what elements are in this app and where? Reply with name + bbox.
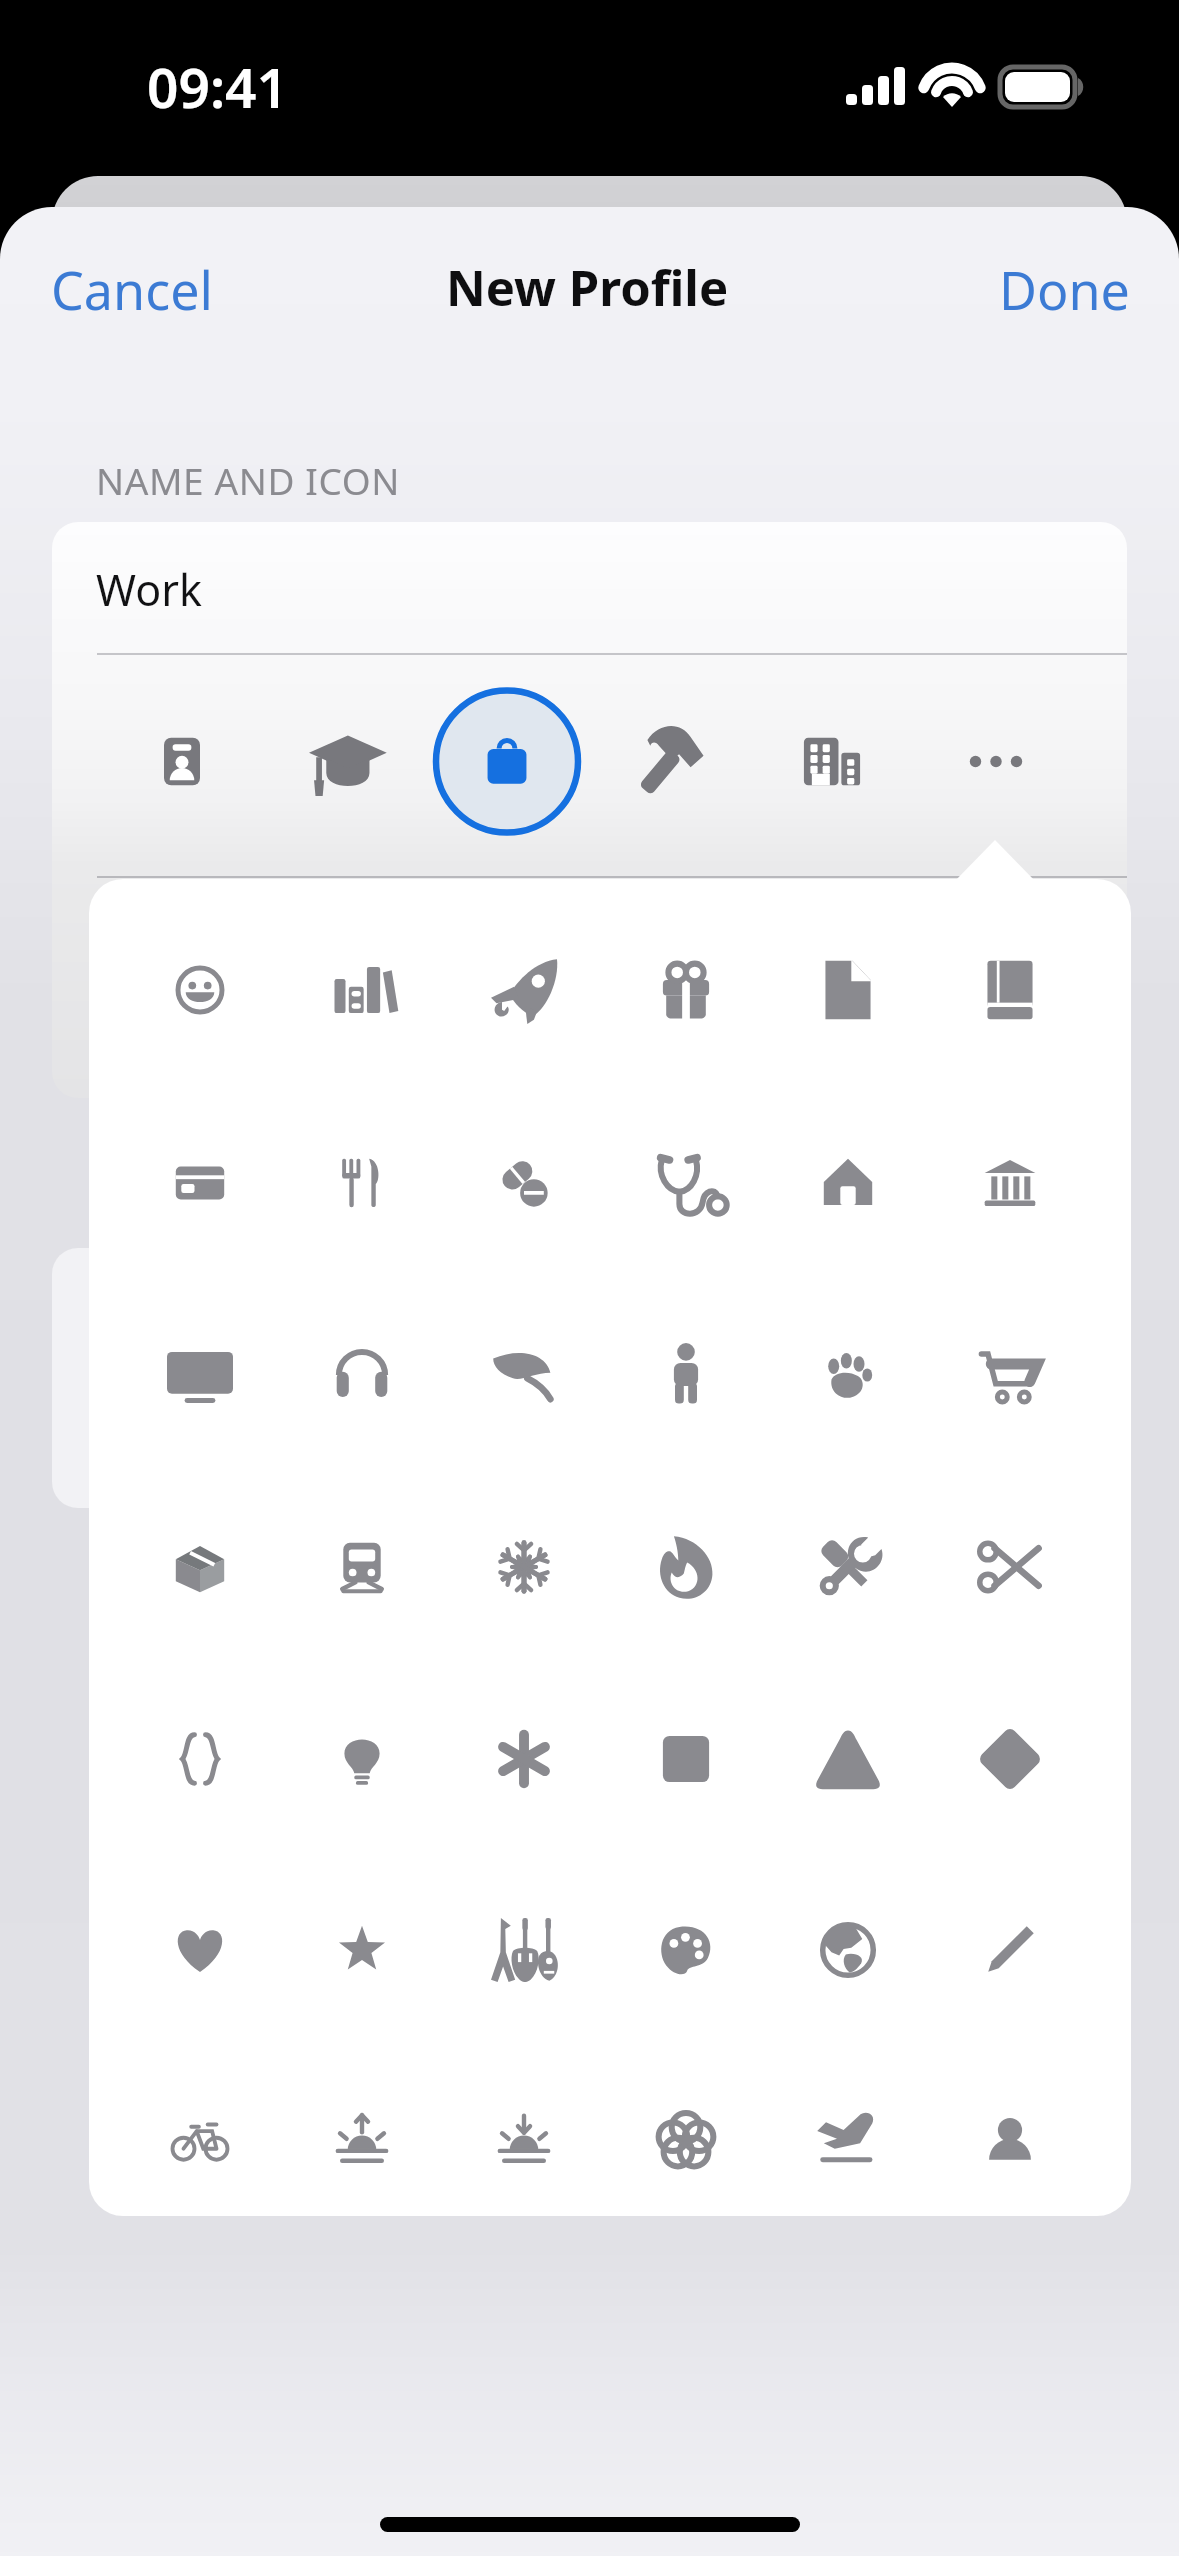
button[interactable]: Flame <box>605 1470 767 1662</box>
button[interactable]: Globe <box>767 1854 929 2046</box>
button[interactable]: Books <box>281 894 443 1086</box>
button[interactable]: Shopping cart <box>929 1278 1091 1470</box>
button[interactable]: Gift <box>605 894 767 1086</box>
button[interactable]: Flower <box>605 2046 767 2216</box>
button[interactable]: Book <box>929 894 1091 1086</box>
button[interactable]: Work <box>411 655 590 868</box>
button[interactable]: Tools <box>767 1470 929 1662</box>
button[interactable]: Airplane <box>767 2046 929 2216</box>
button[interactable]: Credit card <box>119 1086 281 1278</box>
button[interactable]: Done <box>971 234 1158 345</box>
button[interactable]: Paw <box>767 1278 929 1470</box>
button[interactable]: Bicycle <box>119 2046 281 2216</box>
button[interactable]: Leaf <box>443 1278 605 1470</box>
button[interactable]: Sunset <box>443 2046 605 2216</box>
button[interactable]: Document <box>767 894 929 1086</box>
button[interactable]: Monitor <box>119 1278 281 1470</box>
button[interactable]: Cancel <box>23 234 241 345</box>
button[interactable]: Person walking <box>605 1278 767 1470</box>
button[interactable]: Star <box>281 1854 443 2046</box>
button[interactable]: Palette <box>605 1854 767 2046</box>
staticText: Done <box>999 254 1130 325</box>
button[interactable]: Asterisk <box>443 1662 605 1854</box>
button[interactable]: Health <box>605 1086 767 1278</box>
button[interactable]: Diamond <box>929 1662 1091 1854</box>
button[interactable]: Badge <box>52 655 232 868</box>
button[interactable]: Train <box>281 1470 443 1662</box>
button[interactable]: Person <box>929 2046 1091 2216</box>
staticText: Cancel <box>51 254 213 325</box>
button[interactable]: Home <box>767 1086 929 1278</box>
button[interactable]: Tools <box>590 655 769 868</box>
button[interactable]: Bank <box>929 1086 1091 1278</box>
button[interactable]: Medication <box>443 1086 605 1278</box>
button[interactable]: Square <box>605 1662 767 1854</box>
button[interactable]: Education <box>232 655 411 868</box>
staticText: NAME AND ICON <box>96 455 400 505</box>
button[interactable]: Triangle <box>767 1662 929 1854</box>
button[interactable]: Rocket <box>443 894 605 1086</box>
button[interactable]: Light bulb <box>281 1662 443 1854</box>
button[interactable]: Braces <box>119 1662 281 1854</box>
staticText: 09:41 <box>147 49 289 124</box>
button[interactable]: Scissors <box>929 1470 1091 1662</box>
button[interactable]: Heart <box>119 1854 281 2046</box>
staticText: New Profile <box>446 254 729 321</box>
button[interactable]: Sunrise <box>281 2046 443 2216</box>
button[interactable]: More <box>948 655 1127 868</box>
button[interactable]: Smiley <box>119 894 281 1086</box>
button[interactable]: Dining <box>281 1086 443 1278</box>
button[interactable]: Snowflake <box>443 1470 605 1662</box>
button[interactable]: Package <box>119 1470 281 1662</box>
button[interactable]: Pencil <box>929 1854 1091 2046</box>
button[interactable]: Headphones <box>281 1278 443 1470</box>
button[interactable]: Guitars <box>443 1854 605 2046</box>
button[interactable]: Building <box>769 655 948 868</box>
staticText: Work <box>96 560 202 619</box>
